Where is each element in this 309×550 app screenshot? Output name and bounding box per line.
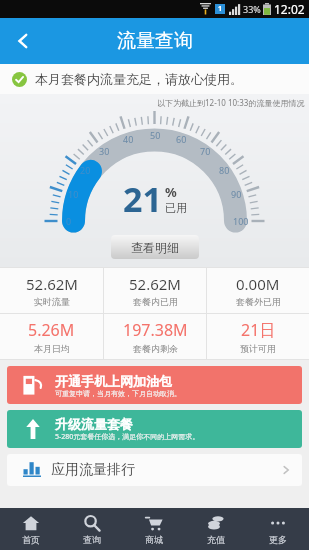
staticText: 流量查询 (117, 29, 193, 53)
staticText: 商城 (145, 534, 163, 545)
button[interactable]: 商城 (123, 508, 185, 550)
staticText: 21 (123, 176, 162, 222)
button[interactable]: 首页 (0, 508, 61, 550)
staticText: 预计可用 (240, 343, 276, 354)
staticText: 21日 (241, 319, 276, 341)
button[interactable]: 查询 (61, 508, 123, 550)
button[interactable]: Back (0, 18, 46, 64)
staticText: 可重复申请，当月有效，下月自动取消。 (55, 389, 181, 398)
button[interactable]: 应用流量排行 (7, 454, 302, 486)
staticText: 以下为截止到12-10 10:33的流量使用情况 (157, 97, 305, 108)
staticText: 查询 (83, 534, 101, 545)
staticText: 本月日均 (34, 343, 70, 354)
staticText: 70 (200, 145, 211, 157)
button[interactable]: 更多 (247, 508, 309, 550)
staticText: 33% (243, 3, 261, 15)
staticText: 80 (219, 164, 230, 176)
staticText: % (165, 183, 177, 201)
staticText: 197.38M (123, 319, 188, 341)
staticText: 开通手机上网加油包 (55, 373, 172, 389)
staticText: 查看明细 (131, 240, 179, 255)
staticText: 52.62M (26, 274, 78, 294)
staticText: 90 (231, 188, 242, 200)
staticText: 52.62M (129, 274, 181, 294)
button[interactable]: 充值 (185, 508, 247, 550)
staticText: 10 (68, 188, 79, 200)
staticText: 100 (233, 215, 249, 227)
staticText: 5-280元套餐任你选，满足你不同的上网需求。 (55, 432, 200, 442)
staticText: 应用流量排行 (51, 461, 135, 479)
staticText: 已用 (165, 201, 187, 215)
staticText: 20 (80, 164, 91, 176)
button[interactable]: 开通手机上网加油包 (7, 366, 302, 404)
staticText: 50 (150, 129, 161, 141)
staticText: 套餐内已用 (133, 296, 178, 307)
staticText: 30 (99, 145, 110, 157)
staticText: 1 (218, 4, 223, 14)
staticText: 升级流量套餐 (55, 416, 133, 432)
staticText: 60 (176, 133, 187, 145)
staticText: 0 (66, 215, 72, 227)
staticText: 套餐外已用 (236, 296, 281, 307)
staticText: 充值 (207, 534, 225, 545)
staticText: 0.00M (236, 274, 280, 294)
staticText: 套餐内剩余 (133, 343, 178, 354)
staticText: 40 (123, 133, 134, 145)
button[interactable]: 升级流量套餐 (7, 410, 302, 448)
staticText: 12:02 (274, 1, 305, 17)
staticText: 实时流量 (34, 296, 70, 307)
staticText: 本月套餐内流量充足，请放心使用。 (35, 71, 243, 87)
staticText: 5.26M (28, 319, 75, 341)
staticText: 更多 (269, 534, 287, 545)
staticText: 首页 (22, 534, 40, 545)
button[interactable]: 查看明细 (111, 235, 199, 259)
